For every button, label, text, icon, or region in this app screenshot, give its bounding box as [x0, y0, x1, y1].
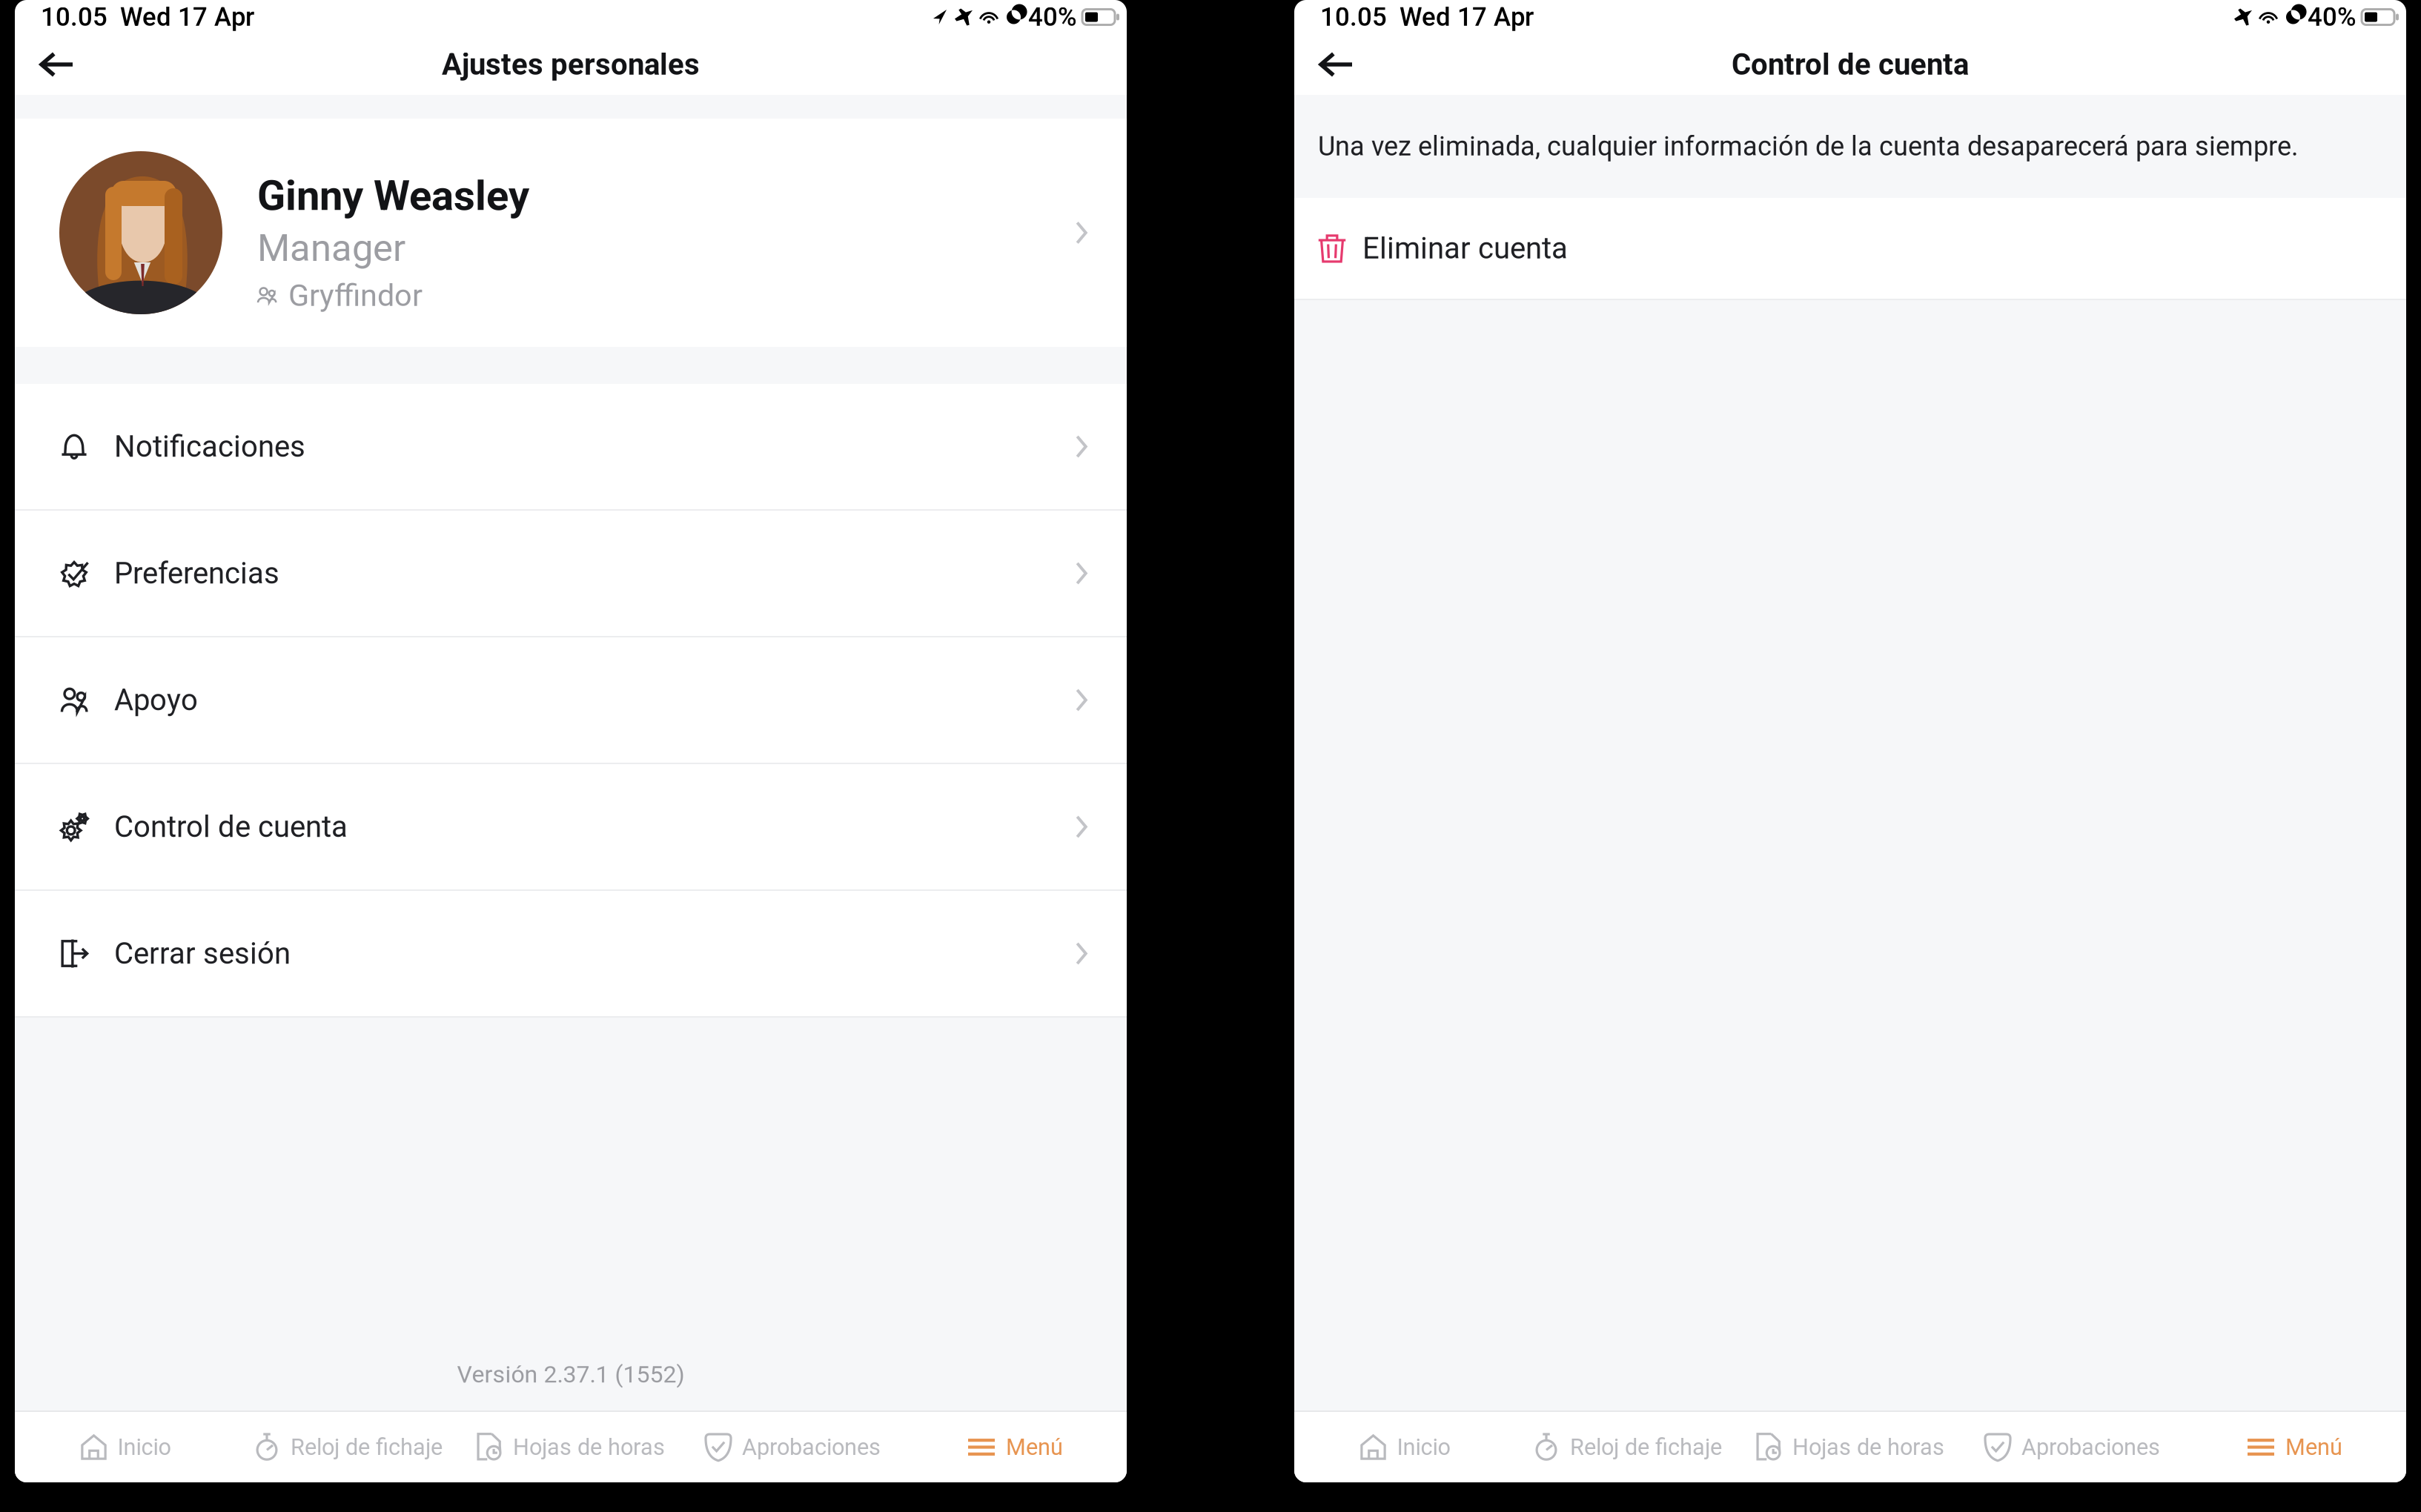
button[interactable]: Control de cuenta — [15, 764, 1127, 889]
button[interactable]: Menú — [2184, 1412, 2406, 1482]
button[interactable]: Ginny Weasley — [15, 119, 1127, 347]
button[interactable]: Aprobaciones — [682, 1412, 904, 1482]
staticText: Cerrar sesión — [114, 936, 291, 971]
button[interactable]: Reloj de fichaje — [237, 1412, 460, 1482]
button[interactable]: Back — [15, 35, 95, 94]
staticText: Gryffindor — [288, 277, 423, 313]
button[interactable]: Inicio — [15, 1412, 237, 1482]
staticText: Apoyo — [114, 683, 198, 717]
button[interactable]: Preferencias — [15, 511, 1127, 636]
button[interactable]: Menú — [904, 1412, 1127, 1482]
staticText: Eliminar cuenta — [1362, 231, 1568, 266]
button[interactable]: Hojas de horas — [1739, 1412, 1961, 1482]
staticText: Wed 17 Apr — [120, 2, 254, 32]
staticText: Notificaciones — [114, 429, 305, 464]
staticText: Aprobaciones — [742, 1434, 881, 1460]
staticText: 10.05 — [41, 2, 107, 32]
button[interactable]: Hojas de horas — [460, 1412, 682, 1482]
button[interactable]: Aprobaciones — [1961, 1412, 2184, 1482]
button[interactable]: Reloj de fichaje — [1517, 1412, 1739, 1482]
staticText: Wed 17 Apr — [1400, 2, 1534, 32]
staticText: Reloj de fichaje — [291, 1434, 443, 1460]
staticText: Manager — [257, 226, 405, 270]
staticText: Control de cuenta — [114, 809, 348, 844]
staticText: Ajustes personales — [442, 47, 700, 82]
button[interactable]: Inicio — [1294, 1412, 1517, 1482]
staticText: Ginny Weasley — [257, 171, 529, 220]
staticText: Hojas de horas — [513, 1434, 665, 1460]
staticText: 40% — [1028, 2, 1077, 32]
staticText: Versión 2.37.1 (1552) — [457, 1360, 685, 1388]
button[interactable]: Notificaciones — [15, 384, 1127, 509]
button[interactable]: Apoyo — [15, 637, 1127, 763]
staticText: 40% — [2308, 2, 2357, 32]
staticText: Menú — [2285, 1434, 2342, 1460]
button[interactable]: Back — [1294, 35, 1374, 94]
staticText: Preferencias — [114, 556, 279, 591]
staticText: Inicio — [1397, 1434, 1450, 1460]
staticText: Reloj de fichaje — [1570, 1434, 1722, 1460]
button[interactable]: Eliminar cuenta — [1294, 198, 2406, 299]
staticText: Hojas de horas — [1792, 1434, 1944, 1460]
staticText: Inicio — [117, 1434, 171, 1460]
button[interactable]: Cerrar sesión — [15, 891, 1127, 1016]
staticText: 10.05 — [1320, 2, 1387, 32]
staticText: Menú — [1006, 1434, 1063, 1460]
staticText: Aprobaciones — [2021, 1434, 2160, 1460]
staticText: Una vez eliminada, cualquier información… — [1318, 131, 2298, 162]
staticText: Control de cuenta — [1732, 47, 1969, 82]
